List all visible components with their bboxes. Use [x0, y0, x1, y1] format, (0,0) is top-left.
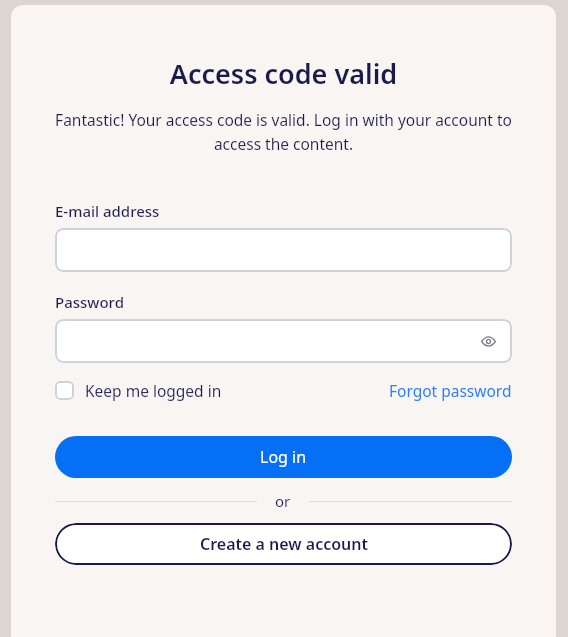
- staticText: Keep me logged in: [85, 380, 222, 401]
- staticText: Create a new account: [200, 533, 368, 555]
- staticText: Access code valid: [55, 55, 512, 92]
- button[interactable]: Forgot password: [389, 376, 512, 405]
- button[interactable]: Show password: [474, 327, 502, 355]
- staticText: Forgot password: [389, 380, 512, 401]
- button[interactable]: Keep me logged in: [55, 376, 222, 405]
- staticText: Password: [55, 292, 124, 312]
- button[interactable]: Log in: [55, 436, 512, 478]
- button[interactable]: Create a new account: [55, 523, 512, 565]
- staticText: Log in: [260, 446, 307, 468]
- staticText: or: [275, 491, 291, 511]
- staticText: Fantastic! Your access code is valid. Lo…: [55, 109, 512, 154]
- button[interactable]: Show password: [55, 319, 512, 363]
- button[interactable]: [55, 228, 512, 272]
- staticText: E-mail address: [55, 201, 160, 221]
